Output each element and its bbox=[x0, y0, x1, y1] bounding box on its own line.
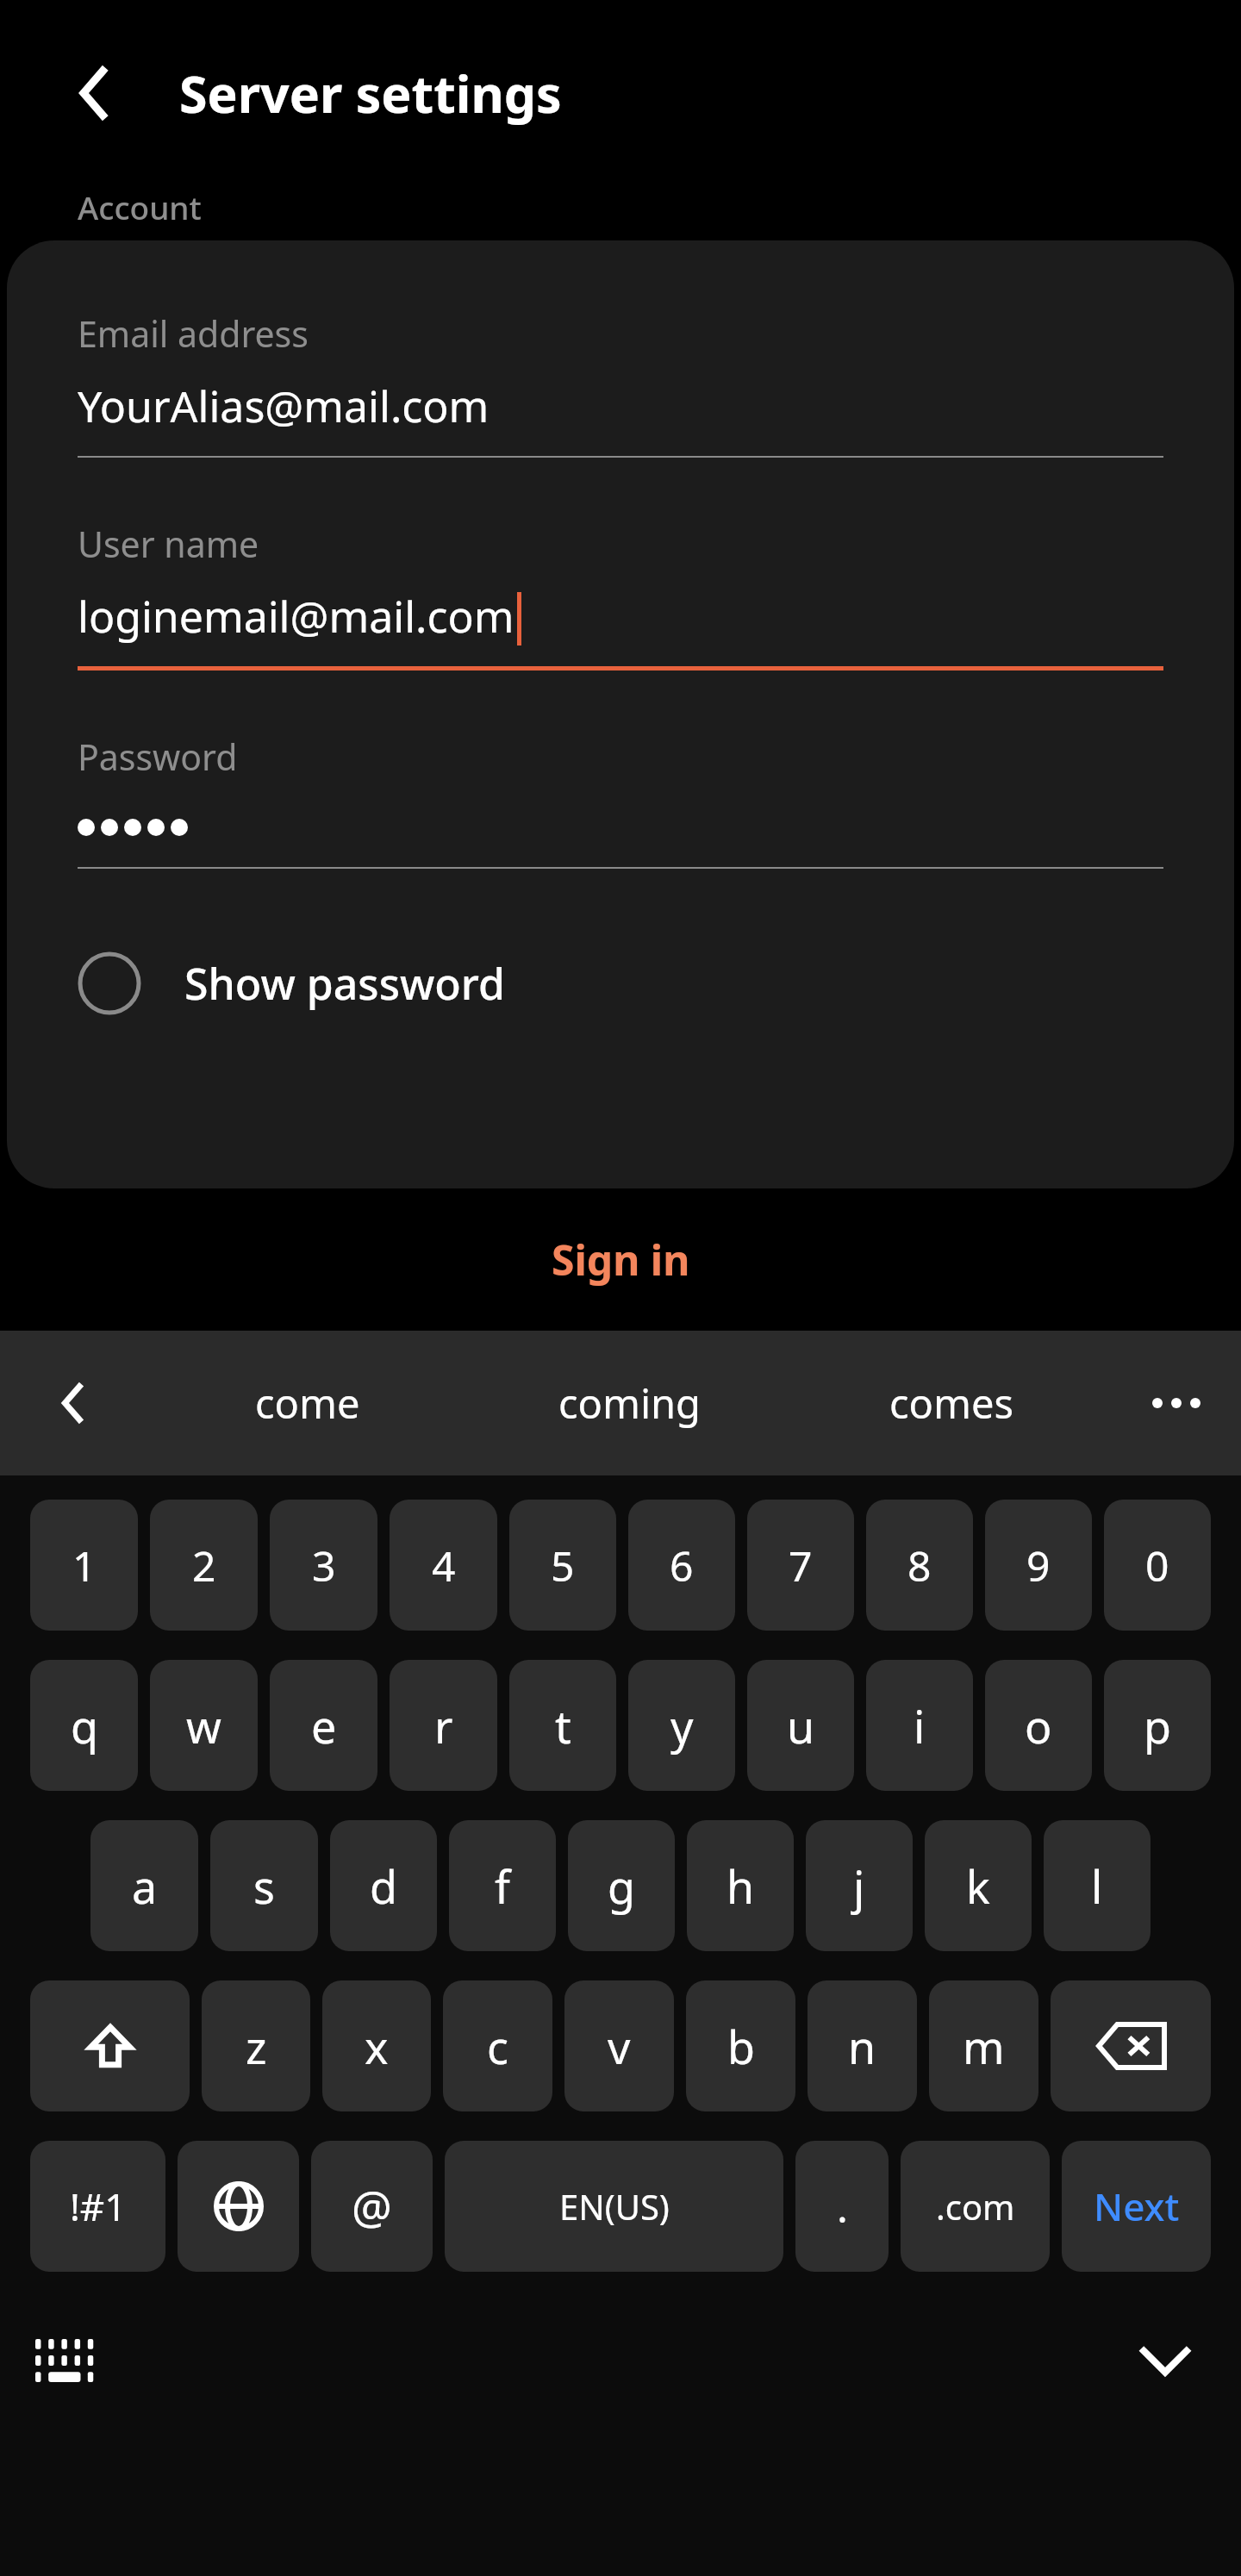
button[interactable]: Change language bbox=[178, 2141, 299, 2272]
button[interactable]: . bbox=[795, 2141, 889, 2272]
staticText: e bbox=[311, 1695, 337, 1756]
button[interactable]: Sign in bbox=[0, 1188, 1241, 1331]
staticText: loginemail@mail.com bbox=[78, 587, 514, 646]
button[interactable]: Shift bbox=[30, 1980, 190, 2111]
staticText: t bbox=[555, 1695, 571, 1756]
staticText: .com bbox=[936, 2183, 1015, 2230]
staticText: User name bbox=[78, 520, 259, 568]
button[interactable]: k bbox=[925, 1820, 1032, 1951]
staticText: v bbox=[608, 2016, 631, 2077]
button[interactable]: 8 bbox=[866, 1500, 973, 1631]
staticText: YourAlias@mail.com bbox=[78, 377, 490, 435]
staticText: Account bbox=[78, 185, 202, 228]
button[interactable]: More options bbox=[1112, 1331, 1241, 1475]
staticText: coming bbox=[558, 1375, 702, 1431]
staticText: a bbox=[132, 1856, 158, 1917]
staticText: w bbox=[186, 1695, 221, 1756]
staticText: d bbox=[370, 1856, 397, 1917]
button[interactable]: i bbox=[866, 1660, 973, 1791]
staticText: 8 bbox=[907, 1537, 932, 1594]
staticText: m bbox=[963, 2016, 1005, 2077]
staticText: Email address bbox=[78, 309, 309, 358]
button[interactable]: 9 bbox=[985, 1500, 1092, 1631]
button[interactable]: n bbox=[808, 1980, 917, 2111]
staticText: 2 bbox=[192, 1537, 216, 1594]
staticText: 6 bbox=[670, 1537, 694, 1594]
button[interactable]: comes bbox=[790, 1331, 1112, 1475]
button[interactable]: e bbox=[270, 1660, 377, 1791]
staticText: Next bbox=[1094, 2180, 1180, 2232]
staticText: j bbox=[853, 1856, 865, 1917]
staticText: k bbox=[966, 1856, 990, 1917]
button[interactable]: Keyboard layout bbox=[31, 2323, 105, 2398]
button[interactable]: g bbox=[568, 1820, 675, 1951]
button[interactable]: .com bbox=[901, 2141, 1050, 2272]
button[interactable]: 3 bbox=[270, 1500, 377, 1631]
button[interactable]: EN(US) bbox=[445, 2141, 783, 2272]
button[interactable]: u bbox=[747, 1660, 854, 1791]
staticText: g bbox=[608, 1856, 635, 1917]
button[interactable]: b bbox=[686, 1980, 795, 2111]
staticText: Sign in bbox=[552, 1232, 690, 1288]
staticText: 5 bbox=[551, 1537, 575, 1594]
staticText: 9 bbox=[1026, 1537, 1051, 1594]
staticText: 1 bbox=[72, 1537, 97, 1594]
button[interactable]: 2 bbox=[150, 1500, 258, 1631]
staticText: s bbox=[253, 1856, 275, 1917]
button[interactable]: 5 bbox=[509, 1500, 616, 1631]
staticText: Show password bbox=[184, 954, 505, 1013]
button[interactable]: j bbox=[806, 1820, 913, 1951]
button[interactable]: Previous suggestions bbox=[0, 1331, 147, 1475]
button[interactable]: 6 bbox=[628, 1500, 735, 1631]
staticText: come bbox=[255, 1375, 360, 1431]
button[interactable]: Backspace bbox=[1051, 1980, 1211, 2111]
button[interactable]: y bbox=[628, 1660, 735, 1791]
staticText: q bbox=[71, 1695, 98, 1756]
button[interactable]: c bbox=[443, 1980, 552, 2111]
staticText: y bbox=[670, 1695, 694, 1756]
button[interactable]: m bbox=[929, 1980, 1038, 2111]
staticText: 7 bbox=[789, 1537, 813, 1594]
button[interactable]: d bbox=[330, 1820, 437, 1951]
staticText: c bbox=[487, 2016, 508, 2077]
button[interactable]: t bbox=[509, 1660, 616, 1791]
button[interactable]: f bbox=[449, 1820, 556, 1951]
button[interactable]: 1 bbox=[30, 1500, 138, 1631]
button[interactable]: z bbox=[202, 1980, 310, 2111]
button[interactable]: w bbox=[150, 1660, 258, 1791]
button[interactable]: q bbox=[30, 1660, 138, 1791]
staticText: Server settings bbox=[179, 59, 562, 128]
button[interactable]: r bbox=[390, 1660, 497, 1791]
staticText: 4 bbox=[432, 1537, 456, 1594]
button[interactable]: p bbox=[1104, 1660, 1211, 1791]
staticText: . bbox=[837, 2179, 848, 2235]
staticText: Password bbox=[78, 733, 238, 781]
button[interactable]: Show password bbox=[78, 936, 1163, 1031]
button[interactable]: h bbox=[687, 1820, 794, 1951]
staticText: i bbox=[914, 1695, 926, 1756]
staticText: r bbox=[434, 1695, 453, 1756]
button[interactable]: Hide keyboard bbox=[1124, 2319, 1207, 2402]
button[interactable]: l bbox=[1044, 1820, 1151, 1951]
button[interactable]: @ bbox=[311, 2141, 433, 2272]
button[interactable]: come bbox=[147, 1331, 469, 1475]
staticText: f bbox=[495, 1856, 510, 1917]
button[interactable]: 7 bbox=[747, 1500, 854, 1631]
button[interactable]: x bbox=[322, 1980, 431, 2111]
button[interactable]: 4 bbox=[390, 1500, 497, 1631]
button[interactable]: 0 bbox=[1104, 1500, 1211, 1631]
button[interactable]: coming bbox=[469, 1331, 790, 1475]
staticText: z bbox=[246, 2016, 267, 2077]
button[interactable]: s bbox=[210, 1820, 318, 1951]
staticText: comes bbox=[889, 1375, 1013, 1431]
button[interactable]: v bbox=[564, 1980, 674, 2111]
button[interactable]: Next bbox=[1062, 2141, 1211, 2272]
button[interactable]: a bbox=[90, 1820, 198, 1951]
button[interactable]: o bbox=[985, 1660, 1092, 1791]
staticText: x bbox=[365, 2016, 389, 2077]
button[interactable]: Back bbox=[52, 56, 126, 130]
staticText: !#1 bbox=[70, 2180, 127, 2232]
staticText: b bbox=[727, 2016, 755, 2077]
button[interactable]: !#1 bbox=[30, 2141, 165, 2272]
staticText: 3 bbox=[312, 1537, 336, 1594]
